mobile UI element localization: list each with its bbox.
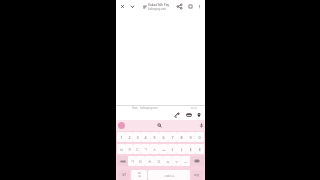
button[interactable]: 6 bbox=[159, 132, 168, 142]
button[interactable]: Keyboard theme bbox=[118, 122, 125, 129]
button[interactable]: ㅔ bbox=[195, 144, 204, 154]
staticText: Save kakaopay.com bbox=[132, 106, 158, 110]
button[interactable]: ㅈ bbox=[125, 144, 133, 154]
button[interactable]: Switch language bbox=[131, 170, 147, 180]
button[interactable]: ㅡ bbox=[181, 156, 190, 166]
staticText: ㅕ bbox=[170, 147, 175, 152]
staticText: 완료 bbox=[194, 173, 200, 177]
staticText: !#1 bbox=[122, 173, 127, 177]
button[interactable]: ㅜ bbox=[172, 156, 181, 166]
staticText: ㅈ bbox=[127, 147, 132, 152]
staticText: ㅛ bbox=[161, 147, 166, 152]
button[interactable]: Autofill address bbox=[196, 112, 202, 118]
button[interactable]: Voice input bbox=[199, 123, 204, 128]
button[interactable]: Autofill password bbox=[174, 112, 180, 118]
staticText: 6 bbox=[162, 135, 165, 140]
button[interactable]: 9 bbox=[186, 132, 195, 142]
button[interactable]: 7 bbox=[168, 132, 177, 142]
staticText: ㅜ bbox=[174, 159, 179, 164]
button[interactable]: ㅋ bbox=[128, 156, 136, 166]
staticText: 한 국 bbox=[191, 106, 197, 110]
button[interactable]: 8 bbox=[177, 132, 186, 142]
staticText: 4 bbox=[144, 135, 147, 140]
button[interactable]: ㅐ bbox=[186, 144, 195, 154]
button[interactable]: ㅅ bbox=[150, 144, 159, 154]
button[interactable]: ㅌ bbox=[136, 156, 145, 166]
button[interactable]: ㅛ bbox=[159, 144, 168, 154]
staticText: 8 bbox=[180, 135, 183, 140]
button[interactable]: ㄷ bbox=[133, 144, 141, 154]
button[interactable]: Enter bbox=[191, 170, 203, 180]
staticText: ㅡ bbox=[183, 159, 188, 164]
button[interactable]: Share bbox=[176, 3, 183, 10]
button[interactable]: 4 bbox=[141, 132, 150, 142]
button[interactable]: More options bbox=[196, 3, 203, 10]
button[interactable]: Shift bbox=[117, 156, 128, 166]
staticText: KakaoTalk Pay bbox=[148, 3, 170, 7]
button[interactable]: Symbols bbox=[118, 170, 130, 180]
button[interactable]: Backspace bbox=[190, 156, 204, 166]
staticText: 스페이스 bbox=[164, 174, 175, 177]
staticText: ㅊ bbox=[147, 159, 152, 164]
staticText: ㅅ bbox=[152, 147, 157, 152]
staticText: 1 bbox=[120, 135, 123, 140]
button[interactable]: 2 bbox=[125, 132, 133, 142]
staticText: ㅔ bbox=[197, 147, 202, 152]
button[interactable]: ㅂ bbox=[117, 144, 125, 154]
button[interactable]: Autofill card bbox=[186, 112, 192, 118]
button[interactable]: Reader mode bbox=[142, 4, 148, 10]
button[interactable]: ㅕ bbox=[168, 144, 177, 154]
button[interactable]: Space bbox=[148, 170, 190, 180]
staticText: 5 bbox=[153, 135, 156, 140]
staticText: ㅂ bbox=[119, 147, 124, 152]
staticText: ㅐ bbox=[188, 147, 193, 152]
staticText: ㅌ bbox=[138, 159, 143, 164]
staticText: 0 bbox=[198, 135, 201, 140]
button[interactable]: ㅍ bbox=[154, 156, 163, 166]
staticText: ㄷ bbox=[135, 147, 140, 152]
staticText: 2 bbox=[128, 135, 131, 140]
button[interactable]: ㅠ bbox=[163, 156, 172, 166]
staticText: ㅋ bbox=[130, 159, 135, 164]
button[interactable]: Search bbox=[157, 123, 162, 128]
staticText: ㄱ bbox=[143, 147, 148, 152]
staticText: 한 영 bbox=[138, 172, 141, 178]
button[interactable]: 5 bbox=[150, 132, 159, 142]
button[interactable]: ㅊ bbox=[145, 156, 154, 166]
button[interactable]: 0 bbox=[195, 132, 204, 142]
staticText: kakaopay.com bbox=[148, 7, 167, 11]
staticText: 3 bbox=[136, 135, 139, 140]
staticText: ㅠ bbox=[165, 159, 170, 164]
button[interactable]: 3 bbox=[133, 132, 141, 142]
button[interactable]: ㄱ bbox=[141, 144, 150, 154]
staticText: ㅍ bbox=[156, 159, 161, 164]
staticText: 9 bbox=[189, 135, 192, 140]
button[interactable]: ㅑ bbox=[177, 144, 186, 154]
staticText: ㅑ bbox=[179, 147, 184, 152]
staticText: 7 bbox=[171, 135, 174, 140]
button[interactable]: Collapse bbox=[129, 3, 136, 10]
button[interactable]: 1 bbox=[117, 132, 125, 142]
button[interactable]: Close bbox=[119, 3, 126, 10]
button[interactable]: Tabs bbox=[187, 3, 194, 10]
